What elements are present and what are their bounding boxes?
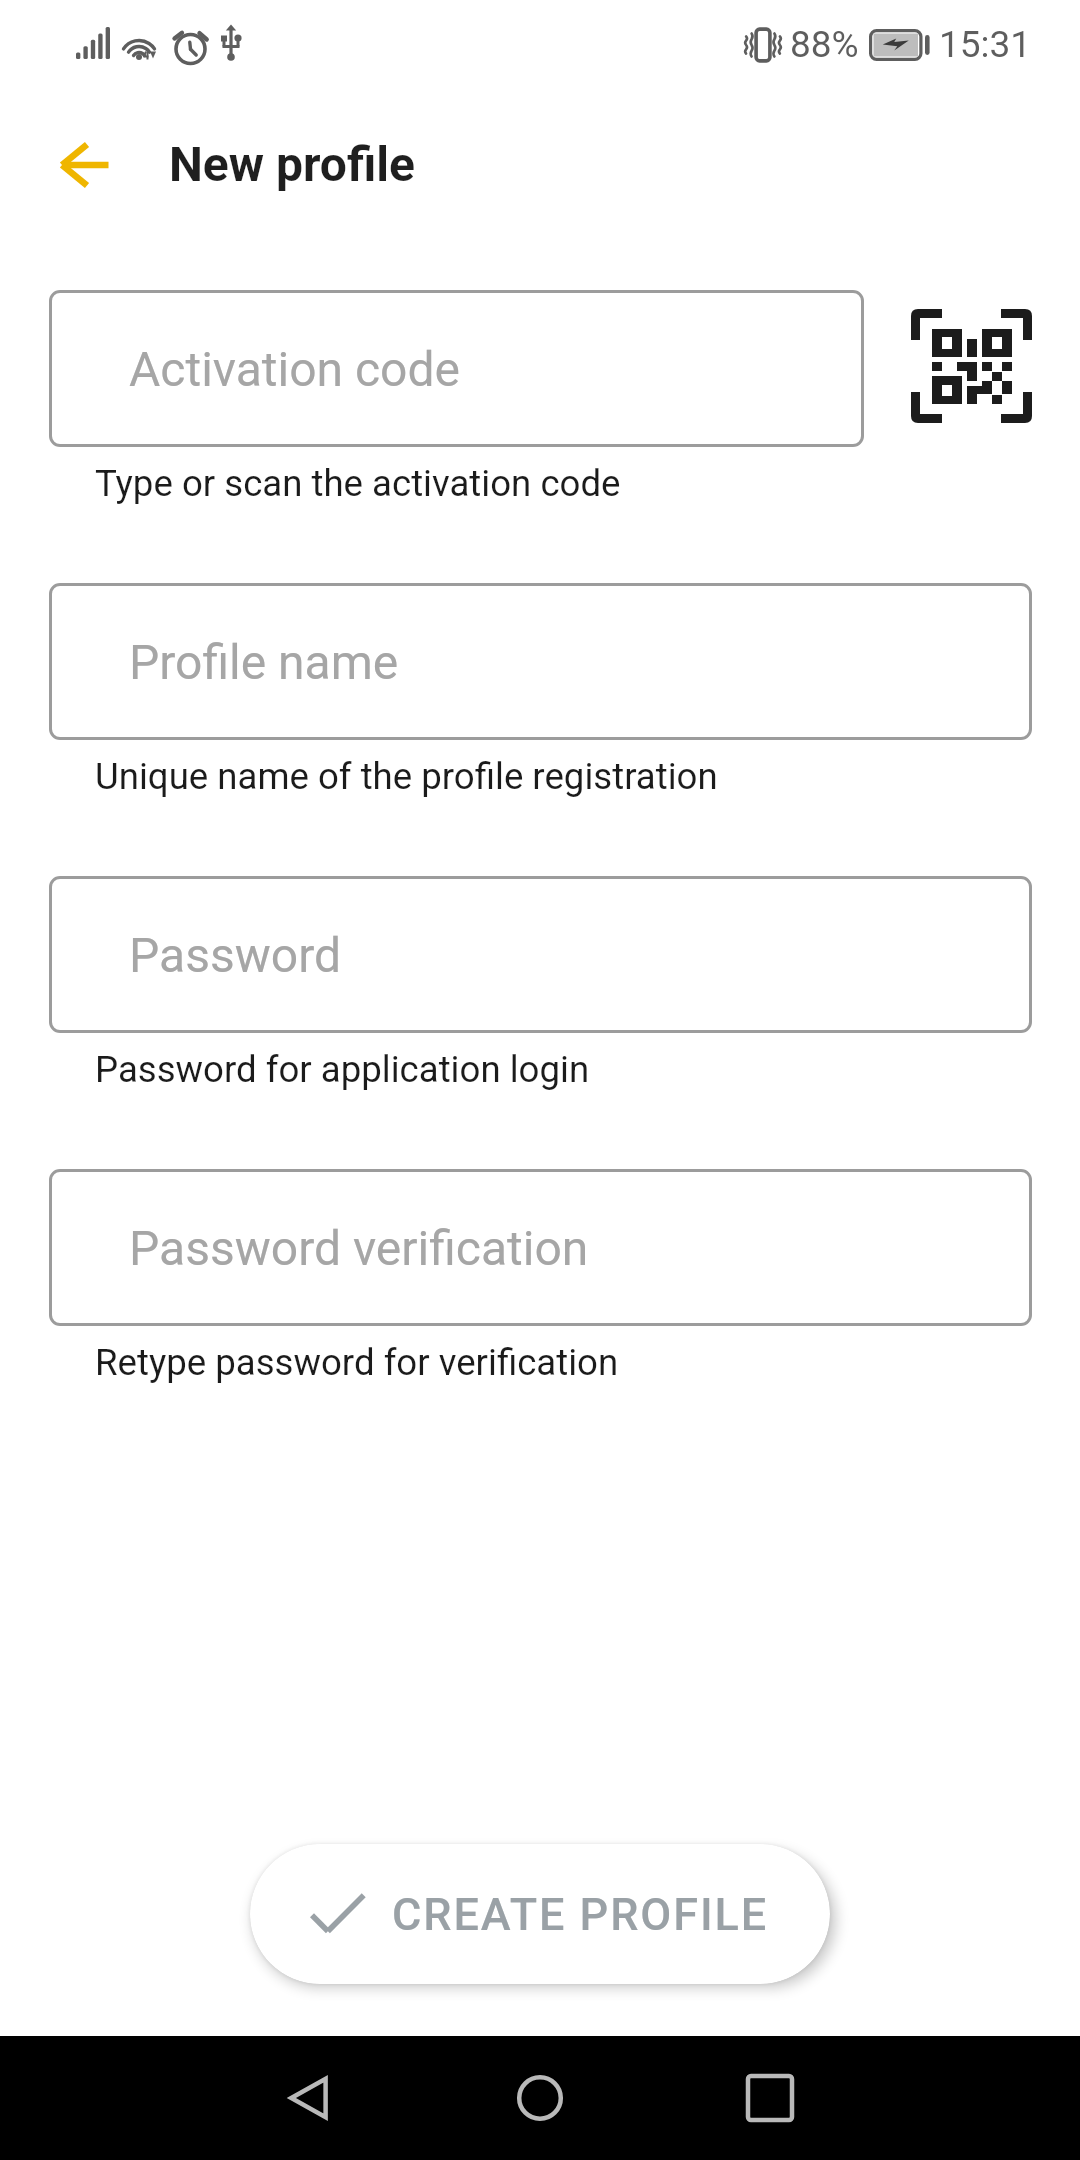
staticText: Unique name of the profile registration (95, 755, 718, 798)
staticText: CREATE PROFILE (392, 1888, 769, 1941)
staticText: 88% (790, 23, 859, 66)
button[interactable]: CREATE PROFILE (250, 1844, 830, 1984)
button[interactable]: Scan QR code (896, 291, 1046, 441)
staticText: Password verification (129, 1220, 589, 1276)
button[interactable]: Back (40, 120, 130, 210)
staticText: 15:31 (939, 23, 1032, 66)
staticText: Retype password for verification (95, 1341, 619, 1384)
staticText: Activation code (129, 341, 461, 397)
button[interactable]: Password (49, 876, 1032, 1033)
button[interactable]: Password verification (49, 1169, 1032, 1326)
button[interactable]: Back (262, 2050, 358, 2146)
staticText: Password for application login (95, 1048, 590, 1091)
staticText: Profile name (129, 634, 399, 690)
staticText: Password (129, 927, 342, 983)
button[interactable]: Activation code (49, 290, 864, 447)
button[interactable]: Profile name (49, 583, 1032, 740)
staticText: Type or scan the activation code (95, 462, 621, 505)
staticText: New profile (169, 136, 415, 192)
button[interactable]: Recents (722, 2050, 818, 2146)
button[interactable]: Home (492, 2050, 588, 2146)
